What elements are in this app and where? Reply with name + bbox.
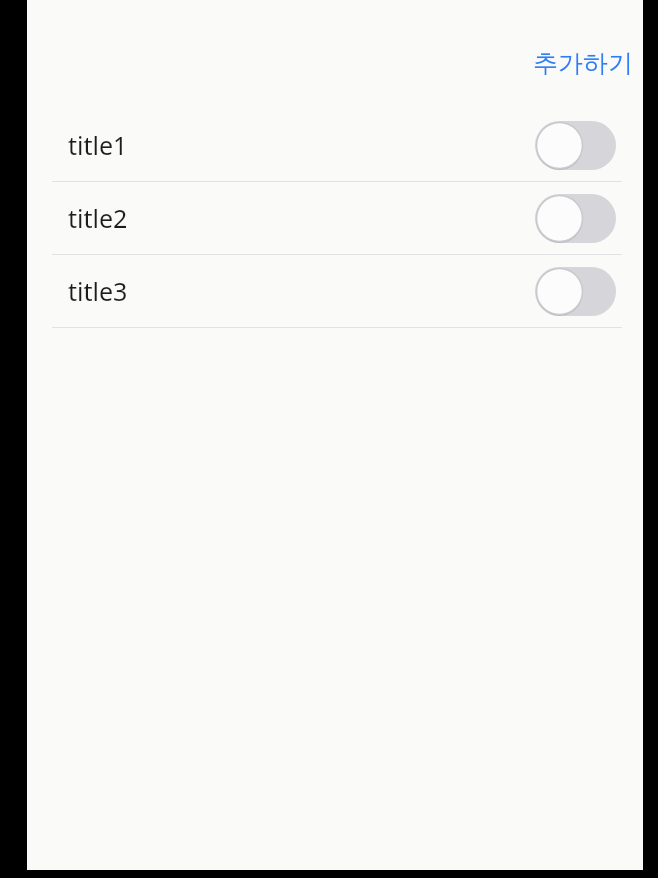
button[interactable]: Toggle xyxy=(535,194,616,243)
staticText: 추가하기 xyxy=(533,48,633,79)
staticText: title2 xyxy=(68,201,535,235)
button[interactable]: 추가하기 xyxy=(529,46,637,81)
button[interactable]: Toggle xyxy=(535,121,616,170)
staticText: title3 xyxy=(68,274,535,308)
button[interactable]: title3 xyxy=(27,255,643,327)
staticText: title1 xyxy=(68,128,535,162)
button[interactable]: title2 xyxy=(27,182,643,254)
button[interactable]: title1 xyxy=(27,109,643,181)
button[interactable]: Toggle xyxy=(535,267,616,316)
